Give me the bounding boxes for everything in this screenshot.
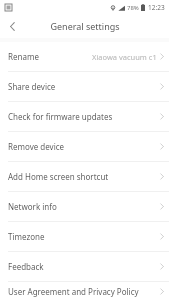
staticText: 78%: [127, 4, 139, 12]
button[interactable]: Feedback: [0, 252, 169, 281]
staticText: Rename: [8, 51, 39, 62]
staticText: Xiaowa vacuum c1: [92, 52, 157, 62]
staticText: Feedback: [8, 261, 44, 272]
staticText: Add Home screen shortcut: [8, 171, 109, 182]
button[interactable]: Rename: [0, 42, 169, 71]
staticText: Share device: [8, 81, 56, 92]
button[interactable]: Remove device: [0, 132, 169, 161]
button[interactable]: Back: [0, 14, 24, 38]
staticText: Remove device: [8, 141, 65, 152]
button[interactable]: Timezone: [0, 222, 169, 251]
staticText: Network info: [8, 201, 57, 212]
staticText: Check for firmware updates: [8, 111, 113, 122]
staticText: 12:23: [148, 3, 165, 12]
button[interactable]: User Agreement and Privacy Policy: [0, 282, 169, 300]
button[interactable]: Check for firmware updates: [0, 102, 169, 131]
staticText: General settings: [50, 20, 120, 32]
button[interactable]: Add Home screen shortcut: [0, 162, 169, 191]
staticText: Timezone: [8, 231, 45, 242]
button[interactable]: Share device: [0, 72, 169, 101]
button[interactable]: Network info: [0, 192, 169, 221]
staticText: User Agreement and Privacy Policy: [8, 286, 139, 297]
